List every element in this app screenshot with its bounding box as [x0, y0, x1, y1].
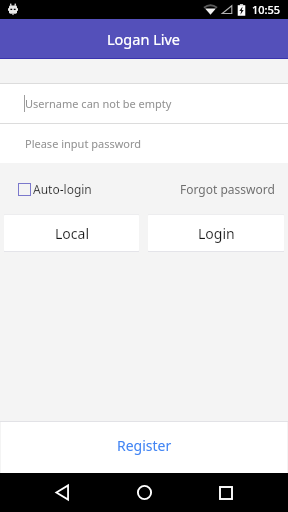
button[interactable]: Register	[1, 422, 287, 473]
button[interactable]: Login	[148, 215, 284, 251]
button[interactable]: Username can not be empty	[0, 84, 288, 123]
staticText: Local	[55, 224, 89, 243]
staticText: Username can not be empty	[25, 96, 172, 111]
staticText: Please input password	[25, 136, 142, 151]
button[interactable]: Local	[4, 215, 139, 251]
button[interactable]: Back	[42, 473, 82, 512]
staticText: Register	[117, 436, 172, 455]
button[interactable]: Please input password	[0, 124, 288, 163]
staticText: Logan Live	[107, 29, 181, 49]
button[interactable]: Home	[124, 473, 164, 512]
staticText: 10:55	[252, 2, 281, 17]
button[interactable]: Recent apps	[206, 473, 246, 512]
staticText: Forgot password	[180, 181, 275, 197]
staticText: Auto-login	[33, 181, 92, 197]
staticText: Login	[198, 224, 235, 243]
button[interactable]: Auto-login	[14, 181, 96, 197]
button[interactable]: Forgot password	[167, 181, 288, 197]
